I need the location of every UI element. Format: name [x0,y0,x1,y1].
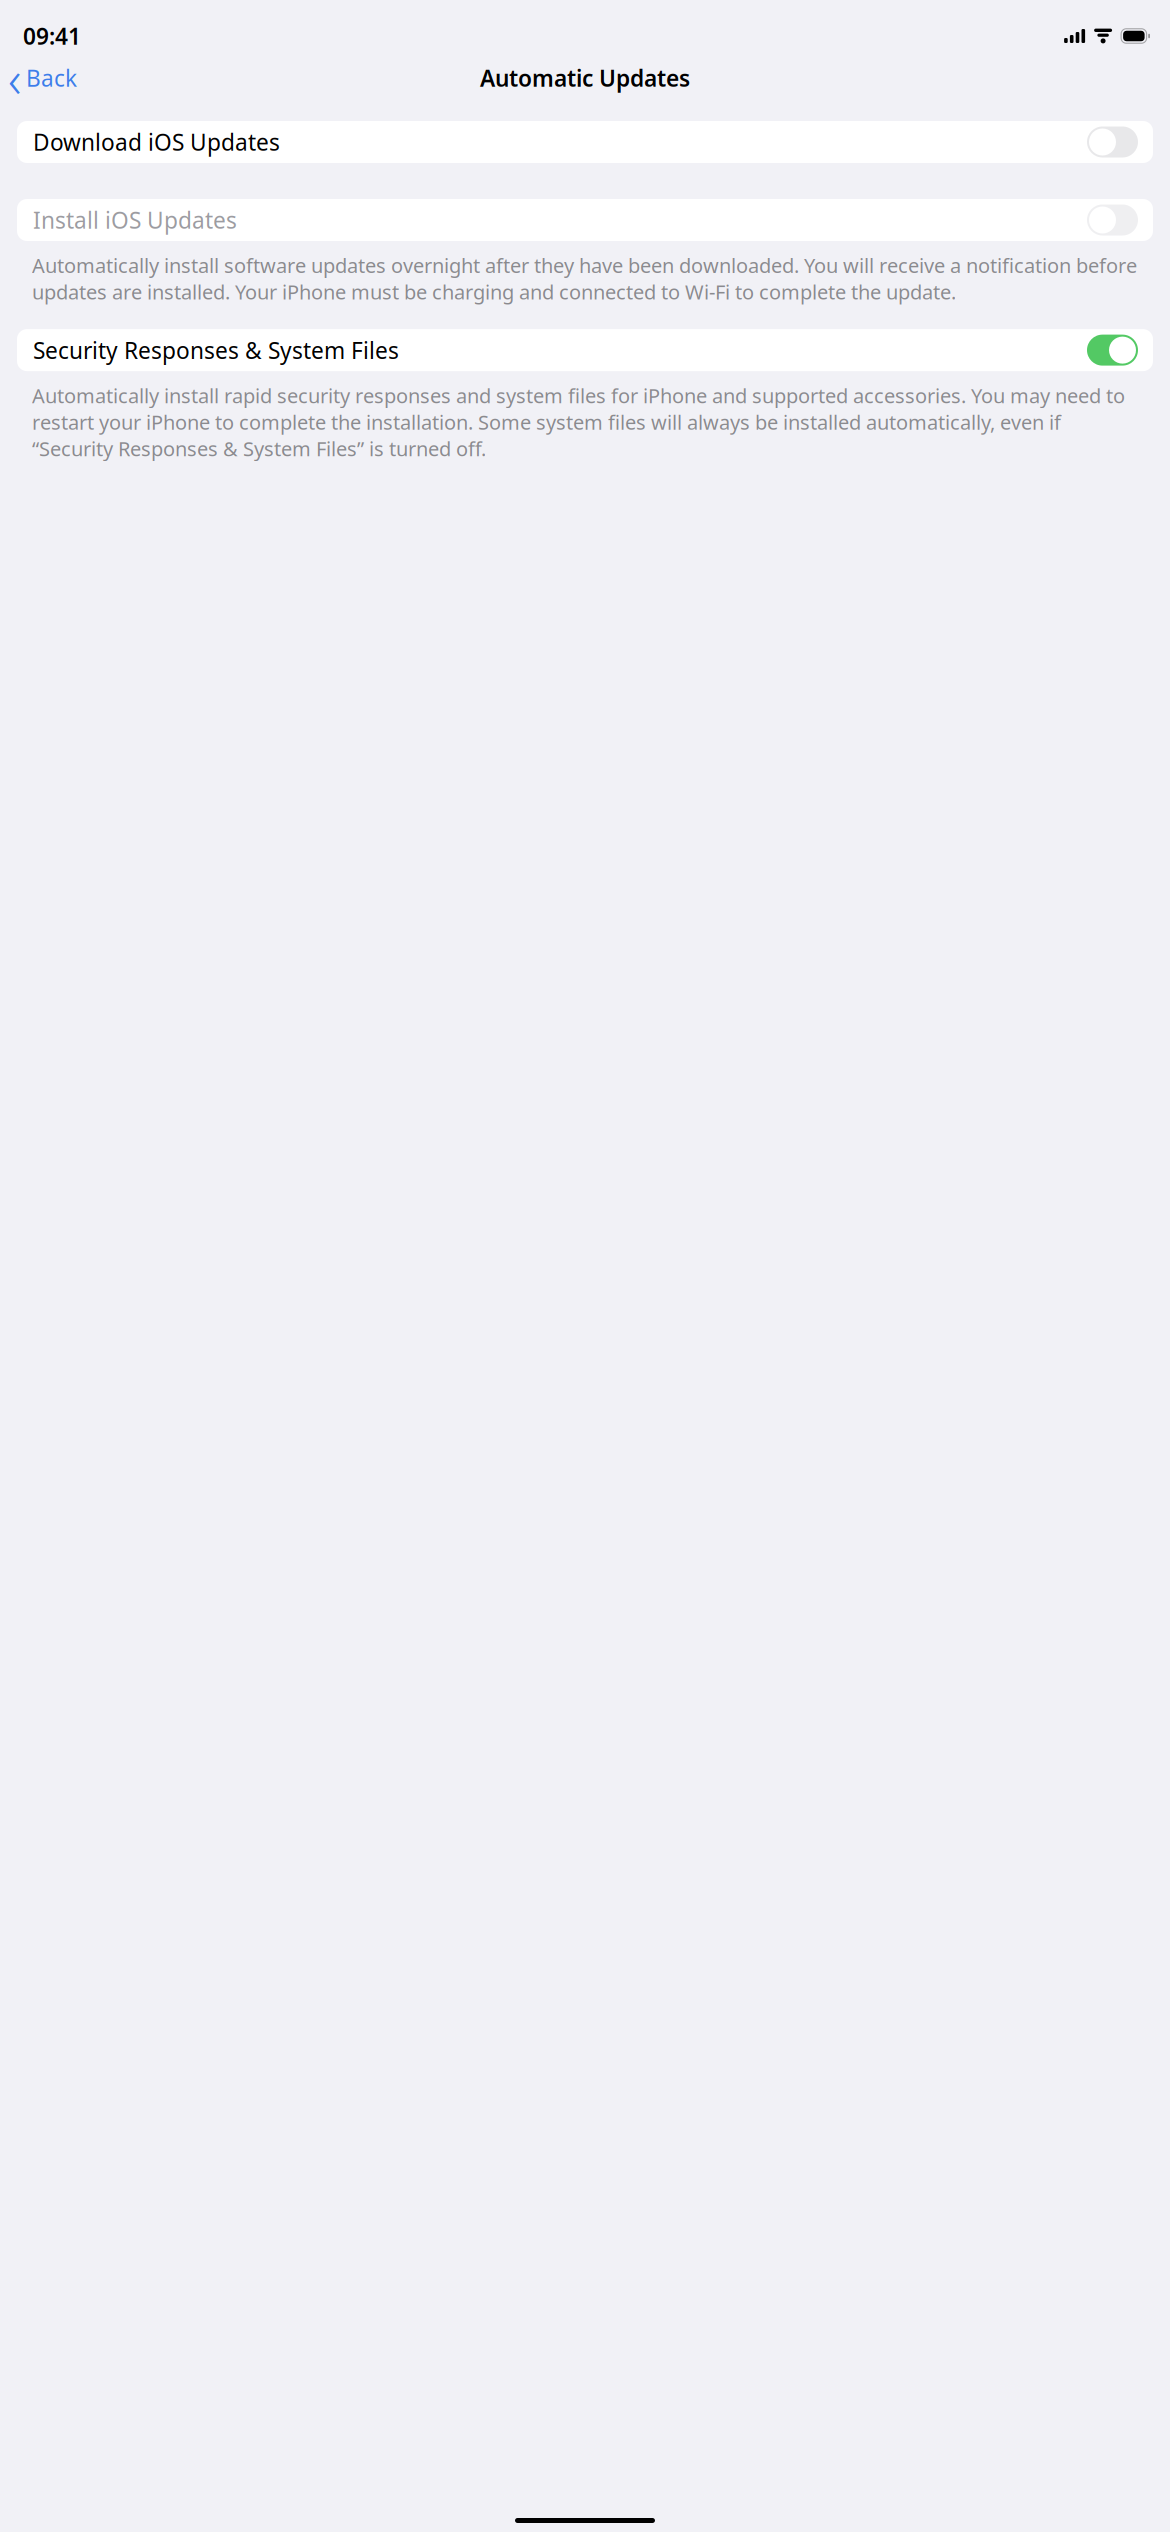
button[interactable]: Install iOS Updates [17,199,1153,241]
staticText: Back [26,63,77,93]
staticText: ‹ [8,44,21,112]
staticText: Automatic Updates [480,63,690,93]
staticText: Security Responses & System Files [33,335,399,365]
staticText: 09:41 [23,21,81,51]
button[interactable]: ‹ [0,56,87,100]
staticText: Automatically install software updates o… [32,252,1137,305]
button[interactable]: Download iOS Updates [17,121,1153,163]
staticText: Download iOS Updates [33,127,280,157]
staticText: Install iOS Updates [33,205,237,235]
button[interactable]: Security Responses & System Files [17,329,1153,371]
staticText: Automatically install rapid security res… [32,382,1125,462]
